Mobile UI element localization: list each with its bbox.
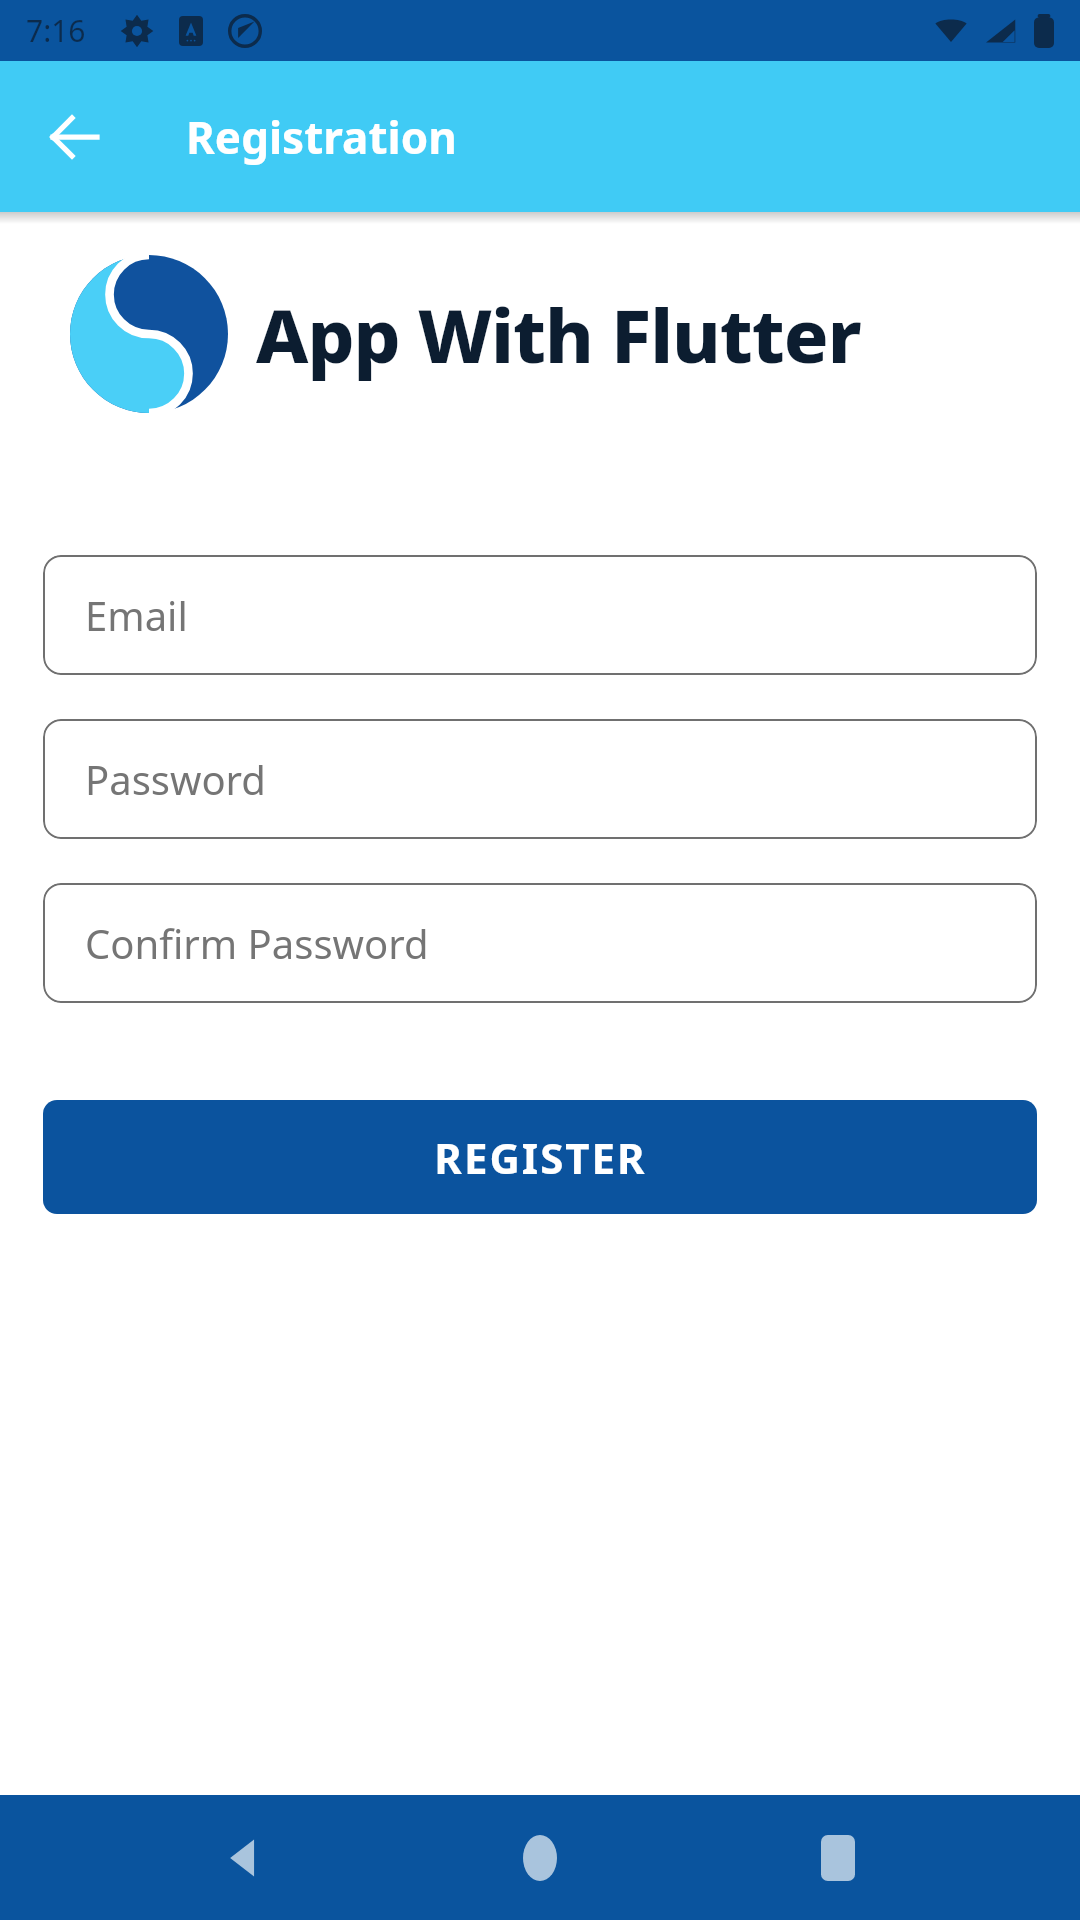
button[interactable]: Back [30,92,120,182]
button[interactable]: Password [43,719,1037,839]
staticText: REGISTER [434,1129,647,1186]
staticText: Confirm Password [85,916,429,970]
button[interactable]: REGISTER [43,1100,1037,1214]
button[interactable]: Home [485,1803,595,1913]
staticText: Password [85,752,266,806]
staticText: Email [85,588,188,642]
button[interactable]: Recent apps [783,1803,893,1913]
staticText: 7:16 [26,10,86,51]
staticText: Registration [186,107,457,167]
button[interactable]: Back [188,1803,298,1913]
button[interactable]: Confirm Password [43,883,1037,1003]
button[interactable]: Email [43,555,1037,675]
staticText: App With Flutter [256,284,861,385]
